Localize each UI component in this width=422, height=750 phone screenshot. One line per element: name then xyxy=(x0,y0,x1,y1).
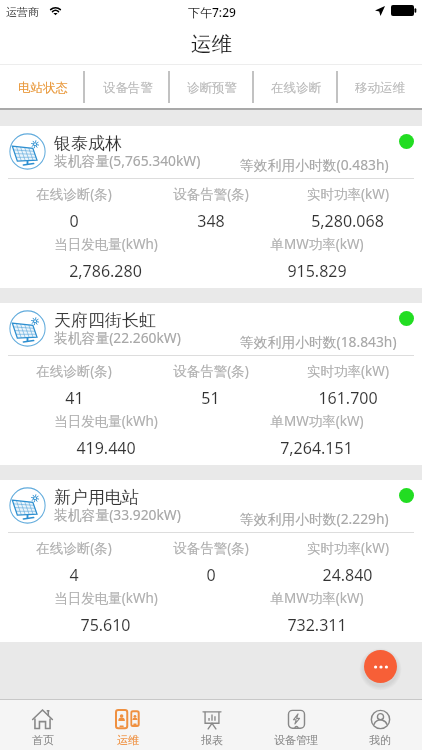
staticText: 4 xyxy=(69,564,79,583)
staticText: 实时功率(kW) xyxy=(307,185,389,203)
staticText: 设备告警(条) xyxy=(173,362,249,380)
staticText: 161.700 xyxy=(318,387,378,406)
staticText: 在线诊断(条) xyxy=(36,185,112,203)
staticText: 单MW功率(kW) xyxy=(270,589,364,607)
staticText: 设备告警 xyxy=(103,80,153,96)
staticText: 装机容量(33.920kW) xyxy=(54,505,181,524)
staticText: 等效利用小时数(18.843h) xyxy=(240,332,397,351)
staticText: 当日发电量(kWh) xyxy=(54,589,158,607)
staticText: 报表 xyxy=(201,733,223,747)
staticText: 诊断预警 xyxy=(187,80,237,96)
button[interactable]: 我的 xyxy=(338,699,422,750)
staticText: 5,280.068 xyxy=(311,210,384,229)
staticText: 运维 xyxy=(117,733,139,747)
staticText: 天府四街长虹 xyxy=(54,310,156,331)
staticText: 装机容量(5,765.340kW) xyxy=(54,151,201,170)
staticText: 51 xyxy=(201,387,220,406)
staticText: 419.440 xyxy=(76,437,136,456)
staticText: 实时功率(kW) xyxy=(307,362,389,380)
staticText: 在线诊断(条) xyxy=(36,362,112,380)
staticText: 单MW功率(kW) xyxy=(270,412,364,430)
button[interactable]: 运维 xyxy=(85,699,170,750)
staticText: 7,264.151 xyxy=(280,437,353,456)
staticText: 运营商 xyxy=(6,5,39,19)
staticText: 当日发电量(kWh) xyxy=(54,235,158,253)
staticText: 新户用电站 xyxy=(54,487,139,508)
staticText: 运维 xyxy=(191,31,232,57)
staticText: 41 xyxy=(65,387,84,406)
button[interactable]: 在线诊断 xyxy=(254,65,338,110)
staticText: 2,786.280 xyxy=(69,260,142,279)
staticText: 732.311 xyxy=(287,614,347,633)
staticText: 348 xyxy=(197,210,225,229)
staticText: 915.829 xyxy=(287,260,347,279)
button[interactable]: 设备告警 xyxy=(85,65,170,110)
staticText: 设备告警(条) xyxy=(173,185,249,203)
staticText: 移动运维 xyxy=(355,80,405,96)
staticText: 等效利用小时数(2.229h) xyxy=(240,509,389,528)
staticText: 在线诊断(条) xyxy=(36,539,112,557)
staticText: 装机容量(22.260kW) xyxy=(54,328,181,347)
button[interactable]: 电站状态 xyxy=(0,65,85,110)
staticText: 等效利用小时数(0.483h) xyxy=(240,155,389,174)
button[interactable]: 首页 xyxy=(0,699,85,750)
staticText: 实时功率(kW) xyxy=(307,539,389,557)
staticText: 在线诊断 xyxy=(271,80,321,96)
staticText: 银泰成林 xyxy=(54,133,122,154)
staticText: 我的 xyxy=(369,733,391,747)
staticText: 0 xyxy=(206,564,216,583)
button[interactable]: More actions xyxy=(364,650,397,683)
staticText: 24.840 xyxy=(322,564,373,583)
staticText: 当日发电量(kWh) xyxy=(54,412,158,430)
button[interactable]: 设备管理 xyxy=(254,699,338,750)
staticText: 设备管理 xyxy=(274,733,318,747)
button[interactable]: 移动运维 xyxy=(338,65,422,110)
staticText: 首页 xyxy=(32,733,54,747)
staticText: 单MW功率(kW) xyxy=(270,235,364,253)
staticText: 电站状态 xyxy=(18,80,68,96)
staticText: 0 xyxy=(69,210,79,229)
staticText: 下午7:29 xyxy=(188,4,236,20)
staticText: 设备告警(条) xyxy=(173,539,249,557)
staticText: 75.610 xyxy=(80,614,131,633)
button[interactable]: 诊断预警 xyxy=(170,65,254,110)
button[interactable]: 报表 xyxy=(170,699,254,750)
